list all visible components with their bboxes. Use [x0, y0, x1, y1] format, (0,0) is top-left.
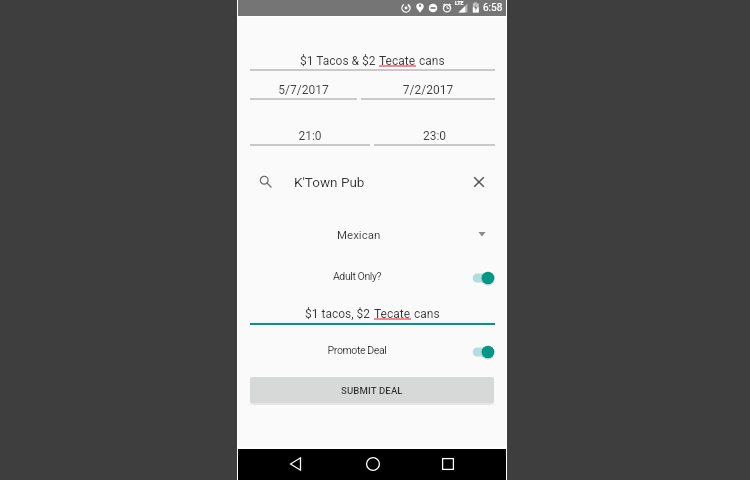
button[interactable]: $1 tacos, $2: [250, 307, 495, 327]
button[interactable]: SUBMIT DEAL: [250, 377, 494, 403]
button[interactable]: Promote Deal: [250, 341, 494, 363]
staticText: 23:0: [374, 129, 495, 143]
staticText: Tecate: [379, 54, 416, 68]
staticText: LTE: [455, 0, 464, 6]
staticText: Promote Deal: [251, 344, 463, 356]
button[interactable]: 23:0: [374, 129, 495, 148]
button[interactable]: Adult Only?: [250, 267, 494, 289]
button[interactable]: $1 Tacos & $2: [250, 54, 495, 73]
button[interactable]: Home: [363, 454, 383, 474]
staticText: 21:0: [250, 129, 370, 143]
other: Search: [259, 175, 272, 188]
button[interactable]: Mexican: [250, 225, 494, 247]
staticText: Mexican: [337, 228, 381, 241]
button[interactable]: Recent apps: [438, 454, 458, 474]
button[interactable]: 5/7/2017: [250, 83, 357, 102]
staticText: $1 tacos, $2: [305, 307, 374, 321]
button[interactable]: Clear search: [469, 172, 489, 192]
button[interactable]: 21:0: [250, 129, 370, 148]
staticText: 6:58: [483, 2, 503, 14]
staticText: Adult Only?: [251, 270, 463, 282]
staticText: 7/2/2017: [361, 83, 495, 97]
staticText: Tecate: [374, 307, 411, 321]
staticText: K'Town Pub: [294, 174, 365, 190]
button[interactable]: 7/2/2017: [361, 83, 495, 102]
button[interactable]: Back: [286, 454, 306, 474]
staticText: $1 Tacos & $2: [300, 54, 379, 68]
staticText: cans: [416, 54, 445, 68]
staticText: SUBMIT DEAL: [341, 385, 403, 396]
staticText: 5/7/2017: [250, 83, 357, 97]
staticText: cans: [411, 307, 440, 321]
button[interactable]: Search: [259, 169, 475, 195]
